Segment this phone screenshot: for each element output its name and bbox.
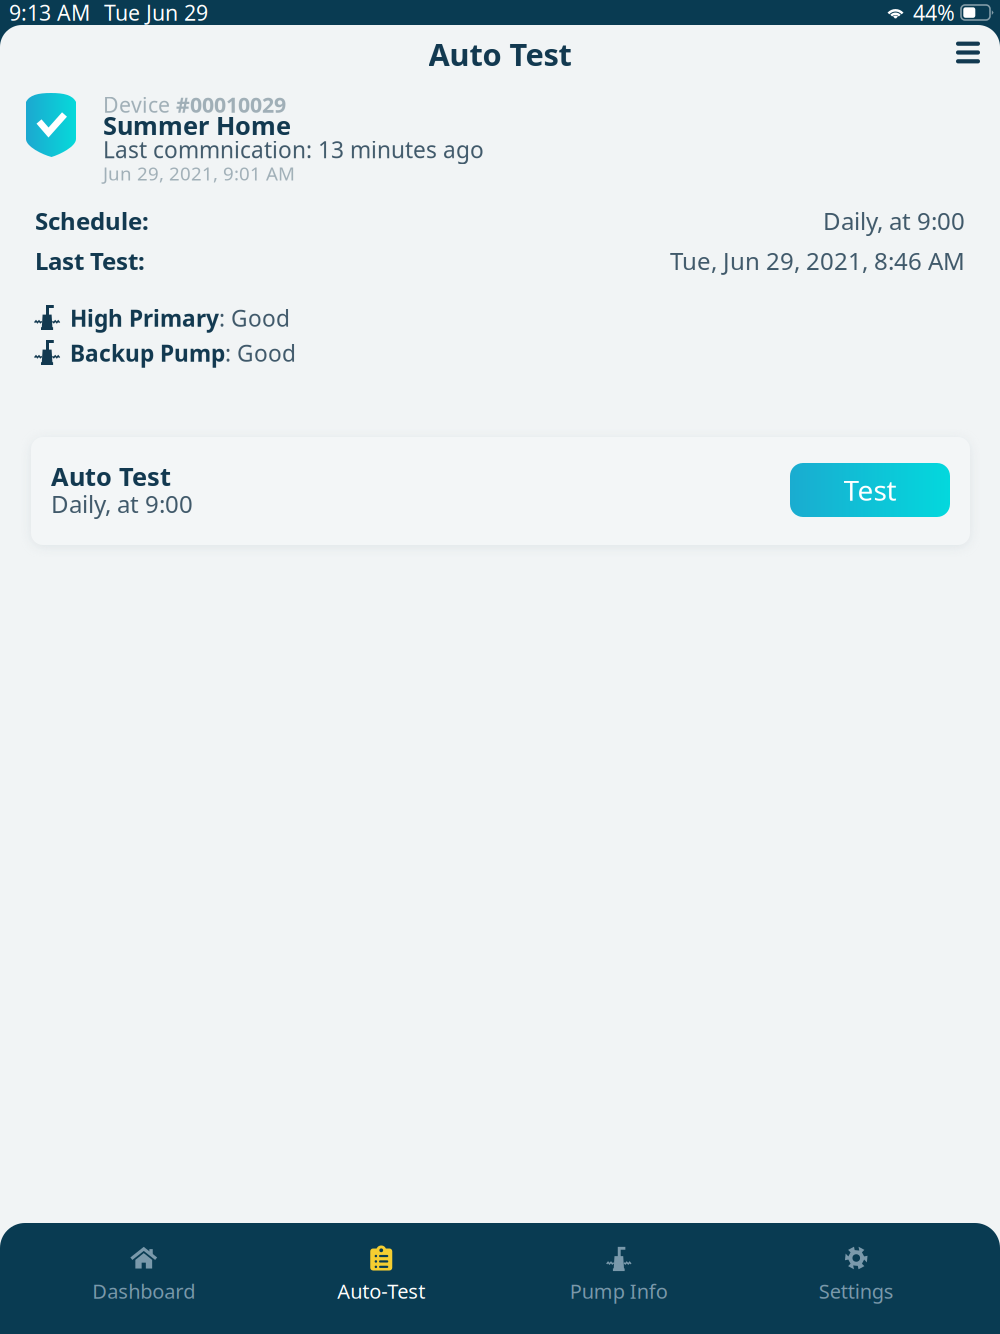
button[interactable]: Settings <box>737 1223 975 1334</box>
staticText: #00010029 <box>176 90 286 119</box>
staticText: Last commnication: 13 minutes ago <box>103 134 484 164</box>
staticText: 44% <box>913 0 955 27</box>
staticText: High Primary <box>70 303 219 333</box>
staticText: Daily, at 9:00 <box>51 488 193 520</box>
staticText: Tue, Jun 29, 2021, 8:46 AM <box>670 245 965 277</box>
staticText: Test <box>843 471 896 509</box>
staticText: Summer Home <box>103 108 291 142</box>
staticText: 9:13 AM <box>9 0 90 27</box>
staticText: Dashboard <box>92 1278 195 1304</box>
staticText: Pump Info <box>570 1278 668 1304</box>
staticText: Auto Test <box>428 34 571 74</box>
button[interactable]: Auto-Test <box>262 1223 500 1334</box>
staticText: Tue Jun 29 <box>104 0 208 27</box>
staticText: Schedule: <box>35 205 149 237</box>
staticText: Auto Test <box>51 459 171 493</box>
button[interactable]: Dashboard <box>25 1223 262 1334</box>
staticText: Settings <box>819 1278 894 1304</box>
staticText: : Good <box>219 303 290 333</box>
staticText: Backup Pump <box>70 338 225 368</box>
staticText: Auto-Test <box>337 1278 425 1304</box>
staticText: Jun 29, 2021, 9:01 AM <box>103 161 295 186</box>
button[interactable]: Test <box>790 463 950 517</box>
button[interactable]: Pump Info <box>500 1223 737 1334</box>
staticText: Last Test: <box>35 245 145 277</box>
staticText: : Good <box>225 338 296 368</box>
staticText: Device <box>103 90 176 119</box>
button[interactable]: Menu <box>940 24 996 80</box>
staticText: Daily, at 9:00 <box>823 205 965 237</box>
